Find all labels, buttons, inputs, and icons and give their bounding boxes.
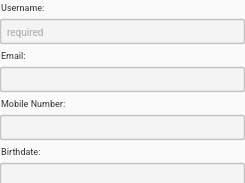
staticText: Email: — [1, 51, 26, 62]
staticText: Username: — [1, 3, 45, 14]
staticText: Mobile Number: — [1, 99, 66, 110]
button[interactable]: Birthdate: — [0, 163, 245, 183]
button[interactable]: Email: — [0, 67, 245, 95]
button[interactable]: Username: — [0, 19, 245, 47]
staticText: required — [7, 27, 44, 39]
staticText: Birthdate: — [1, 147, 41, 158]
button[interactable]: Mobile Number: — [0, 115, 245, 143]
